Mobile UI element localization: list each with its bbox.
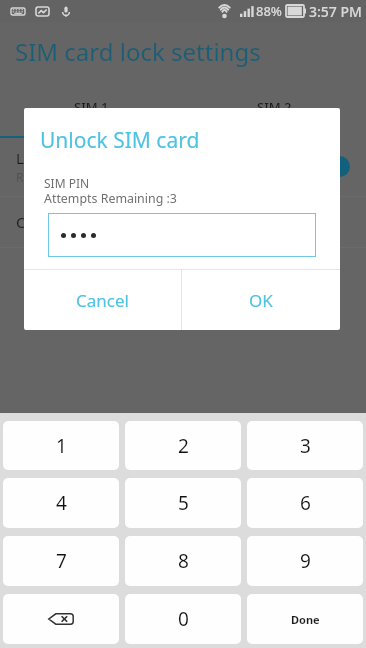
button[interactable]: 2 (125, 421, 241, 470)
staticText: Unlock SIM card (40, 126, 200, 155)
staticText: OK (249, 289, 273, 312)
staticText: Change SIM PIN (16, 212, 131, 232)
staticText: Done (291, 612, 320, 627)
staticText: Lock SIM card (16, 148, 114, 168)
button[interactable]: 3 (247, 421, 363, 470)
button[interactable]: 9 (247, 536, 363, 586)
button[interactable]: OK (182, 270, 340, 330)
button[interactable]: 5 (125, 478, 241, 528)
staticText: 0 (178, 606, 189, 632)
staticText: 2 (178, 433, 189, 459)
button[interactable]: 7 (3, 536, 119, 586)
staticText: Require PIN to use phone (16, 169, 161, 185)
button[interactable]: 8 (125, 536, 241, 586)
staticText: 5 (178, 490, 189, 516)
staticText: 9 (300, 548, 311, 574)
button[interactable]: 0 (125, 594, 241, 644)
button[interactable]: Change SIM PIN (0, 197, 366, 247)
staticText: 3 (300, 433, 311, 459)
button[interactable]: Done (247, 594, 363, 644)
staticText: 6 (300, 490, 311, 516)
staticText: SIM card lock settings (15, 35, 261, 68)
button[interactable]: SIM 1 (0, 98, 183, 116)
staticText: SIM PIN (44, 175, 90, 191)
button[interactable]: Cancel (24, 270, 181, 330)
staticText: SIM 1 (74, 98, 109, 116)
button[interactable]: 6 (247, 478, 363, 528)
staticText: Attempts Remaining :3 (44, 190, 177, 207)
staticText: SIM 2 (257, 98, 292, 116)
button[interactable]: 1 (3, 421, 119, 470)
staticText: 1 (56, 433, 67, 459)
button[interactable]: SIM 2 (183, 98, 366, 116)
button[interactable]: Delete (3, 594, 119, 644)
staticText: 3:57 PM (309, 2, 362, 21)
staticText: Cancel (76, 289, 129, 312)
button[interactable]: Lock SIM card (0, 138, 366, 194)
staticText: 8 (178, 548, 189, 574)
staticText: 4 (56, 490, 67, 516)
button[interactable]: 4 (3, 478, 119, 528)
staticText: 88% (256, 2, 282, 20)
staticText: 7 (56, 548, 67, 574)
